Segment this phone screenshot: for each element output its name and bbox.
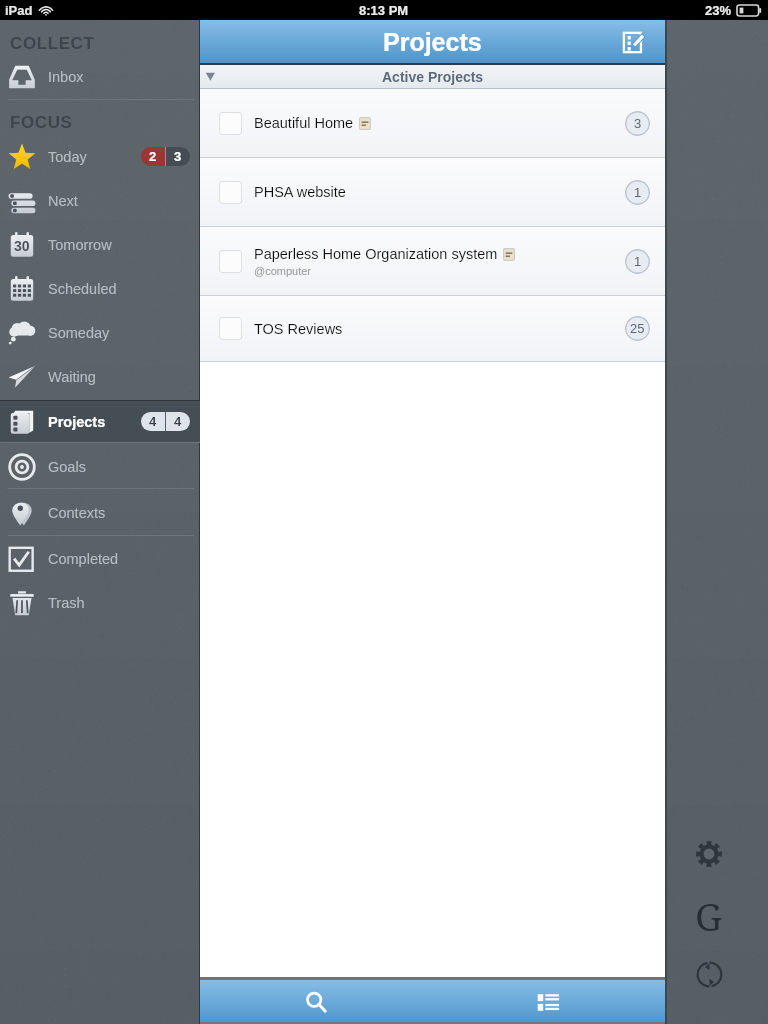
staticText: Goals: [48, 459, 86, 475]
staticText: iPad: [5, 3, 33, 18]
staticText: Next: [48, 193, 78, 209]
staticText: 23%: [705, 3, 732, 18]
staticText: Beautiful Home: [254, 115, 354, 131]
staticText: Today: [48, 149, 87, 165]
button[interactable]: View options: [432, 980, 665, 1024]
staticText: @computer: [254, 265, 312, 277]
button[interactable]: Complete Beautiful Home: [200, 89, 665, 157]
button[interactable]: Projects: [0, 400, 200, 443]
staticText: TOS Reviews: [254, 321, 343, 337]
staticText: Contexts: [48, 505, 106, 521]
button[interactable]: Complete Paperless Home Organization sys…: [219, 250, 242, 273]
button[interactable]: Complete PHSA website: [219, 181, 242, 204]
button[interactable]: Complete Beautiful Home: [219, 112, 242, 135]
button[interactable]: Scheduled: [0, 267, 200, 310]
button[interactable]: Google sync: [685, 890, 733, 938]
button[interactable]: Complete PHSA website: [200, 158, 665, 226]
staticText: Scheduled: [48, 281, 117, 297]
button[interactable]: Complete Paperless Home Organization sys…: [200, 227, 665, 295]
button[interactable]: Trash: [0, 581, 200, 624]
button[interactable]: Inbox: [0, 55, 200, 98]
staticText: Projects: [48, 414, 106, 430]
button[interactable]: Contexts: [0, 491, 200, 534]
button[interactable]: Completed: [0, 537, 200, 580]
staticText: G: [695, 890, 723, 938]
button[interactable]: Complete TOS Reviews: [200, 296, 665, 361]
staticText: Completed: [48, 551, 119, 567]
button[interactable]: New project: [617, 25, 651, 59]
staticText: 3: [174, 149, 182, 164]
staticText: Tomorrow: [48, 237, 112, 253]
staticText: 1: [634, 185, 642, 200]
button[interactable]: Complete TOS Reviews: [219, 317, 242, 340]
button[interactable]: Waiting: [0, 355, 200, 398]
staticText: Active Projects: [382, 69, 484, 85]
staticText: 3: [634, 116, 642, 131]
button[interactable]: Search: [200, 980, 432, 1024]
staticText: Inbox: [48, 69, 84, 85]
staticText: 2: [149, 149, 157, 164]
staticText: Someday: [48, 325, 110, 341]
button[interactable]: Next: [0, 179, 200, 222]
staticText: 25: [630, 321, 645, 336]
button[interactable]: Goals: [0, 445, 200, 488]
staticText: PHSA website: [254, 184, 346, 200]
staticText: 8:13 PM: [359, 3, 409, 18]
staticText: Trash: [48, 595, 85, 611]
button[interactable]: Settings: [685, 830, 733, 878]
staticText: Waiting: [48, 369, 96, 385]
staticText: 4: [149, 414, 157, 429]
staticText: 1: [634, 254, 642, 269]
button[interactable]: Active Projects: [200, 65, 665, 88]
staticText: COLLECT: [10, 34, 95, 53]
staticText: 4: [174, 414, 182, 429]
button[interactable]: 30: [0, 223, 200, 266]
button[interactable]: Someday: [0, 311, 200, 354]
staticText: Paperless Home Organization system: [254, 246, 498, 262]
staticText: 30: [14, 238, 30, 254]
button[interactable]: Refresh: [685, 950, 733, 998]
staticText: Projects: [383, 28, 482, 56]
staticText: FOCUS: [10, 113, 73, 132]
button[interactable]: Today: [0, 135, 200, 178]
